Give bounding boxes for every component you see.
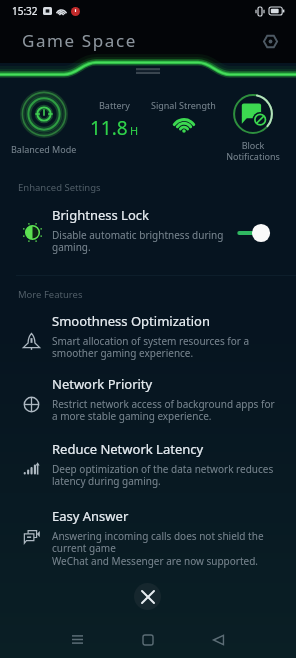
staticText: More Features <box>18 288 83 301</box>
staticText: H <box>130 123 139 138</box>
staticText: Game Space <box>22 29 137 52</box>
button[interactable]: Recents <box>54 625 100 654</box>
staticText: Easy Answer <box>52 507 129 525</box>
button[interactable]: Brightness Lock toggle <box>238 205 284 253</box>
staticText: Block Notifications <box>226 139 280 162</box>
button[interactable]: Brightness Lock <box>0 203 296 257</box>
button[interactable]: Back <box>195 625 241 654</box>
button[interactable]: Balanced Mode <box>4 91 84 155</box>
staticText: Signal Strength <box>151 99 216 111</box>
staticText: Disable automatic brightness during gami… <box>52 228 234 254</box>
staticText: Smoothness Optimization <box>52 312 211 330</box>
staticText: Battery <box>99 99 130 111</box>
button[interactable]: Close <box>134 583 161 610</box>
staticText: 11.8 <box>90 115 128 141</box>
staticText: Reduce Network Latency <box>52 440 204 458</box>
button[interactable]: Easy Answer <box>0 504 296 571</box>
staticText: Network Priority <box>52 375 153 393</box>
staticText: Deep optimization of the data network re… <box>52 462 280 488</box>
button[interactable]: Settings <box>256 27 284 55</box>
staticText: Balanced Mode <box>11 143 77 155</box>
staticText: Smart allocation of system resources for… <box>52 334 280 360</box>
staticText: Enhanced Settings <box>18 181 101 194</box>
staticText: Brightness Lock <box>52 206 149 224</box>
button[interactable]: Smoothness Optimization <box>0 309 296 363</box>
button[interactable]: Network Priority <box>0 372 296 426</box>
button[interactable]: Block Notifications <box>222 93 284 162</box>
button[interactable]: Reduce Network Latency <box>0 437 296 491</box>
staticText: 15:32 <box>12 4 38 18</box>
button[interactable]: Home <box>125 625 171 654</box>
staticText: Answering incoming calls does not shield… <box>52 529 280 568</box>
staticText: Restrict network access of background ap… <box>52 397 280 423</box>
